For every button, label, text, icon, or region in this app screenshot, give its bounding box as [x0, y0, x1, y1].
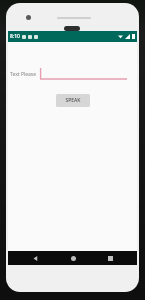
staticText: SPEAK — [65, 97, 81, 104]
button[interactable]: Back — [25, 251, 45, 265]
staticText: 8:10 — [10, 33, 20, 40]
button[interactable]: SPEAK — [56, 94, 90, 107]
button[interactable]: Text Please — [10, 68, 127, 80]
button[interactable]: Recents — [100, 251, 120, 265]
button[interactable]: Home — [63, 251, 83, 265]
staticText: Text Please — [10, 71, 37, 78]
